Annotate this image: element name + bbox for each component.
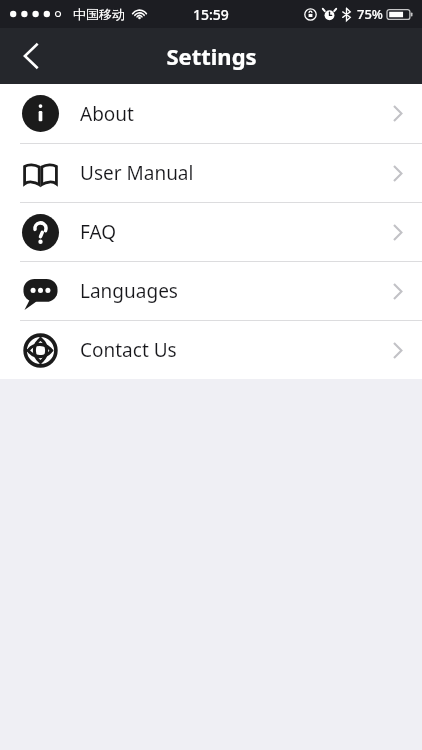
staticText: User Manual [80, 160, 372, 186]
staticText: Settings [166, 41, 257, 71]
button[interactable]: FAQ [0, 203, 422, 261]
button[interactable]: Contact Us [0, 321, 422, 379]
staticText: 15:59 [193, 5, 229, 24]
staticText: Languages [80, 278, 372, 304]
staticText: About [80, 101, 372, 127]
staticText: FAQ [80, 219, 372, 245]
button[interactable]: Languages [0, 262, 422, 320]
staticText: 75% [357, 5, 383, 23]
button[interactable]: User Manual [0, 144, 422, 202]
button[interactable]: About [0, 84, 422, 143]
staticText: Contact Us [80, 337, 372, 363]
staticText: 中国移动 [73, 6, 125, 22]
button[interactable]: Back [0, 28, 62, 84]
